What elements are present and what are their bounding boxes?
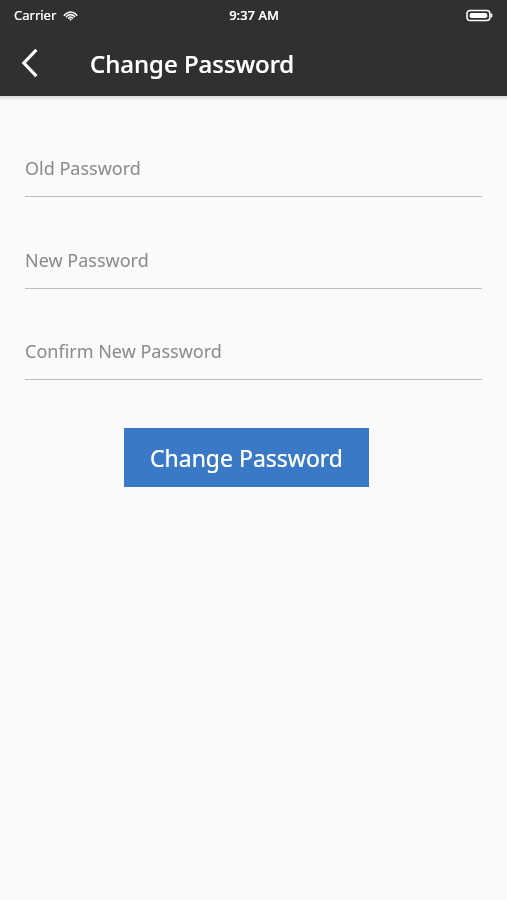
staticText: Change Password — [150, 442, 343, 473]
staticText: New Password — [25, 248, 149, 273]
button[interactable]: Back — [0, 33, 60, 93]
button[interactable]: New Password — [0, 232, 507, 289]
staticText: Confirm New Password — [25, 339, 222, 364]
button[interactable]: Old Password — [0, 140, 507, 197]
button[interactable]: Confirm New Password — [0, 323, 507, 380]
staticText: Old Password — [25, 156, 141, 181]
button[interactable]: Change Password — [124, 428, 369, 487]
staticText: Carrier — [14, 6, 57, 24]
staticText: Change Password — [90, 47, 295, 80]
staticText: 9:37 AM — [229, 6, 279, 24]
